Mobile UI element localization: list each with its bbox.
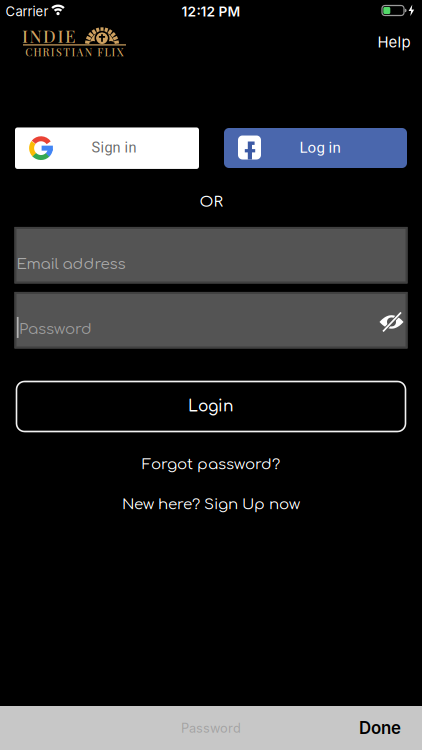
staticText: E bbox=[65, 24, 76, 47]
staticText: Forgot password? bbox=[142, 456, 280, 473]
staticText: H bbox=[33, 45, 41, 59]
staticText: I bbox=[22, 24, 28, 47]
staticText: I bbox=[57, 24, 63, 47]
staticText: R bbox=[43, 45, 50, 59]
staticText: S bbox=[56, 45, 62, 59]
staticText: Log in bbox=[299, 139, 340, 156]
button[interactable]: Sign in bbox=[15, 127, 199, 169]
staticText: I bbox=[112, 45, 116, 59]
button[interactable]: New here? Sign Up now bbox=[122, 496, 300, 513]
staticText: New here? Sign Up now bbox=[122, 496, 300, 513]
staticText: 12:12 PM bbox=[181, 3, 240, 20]
staticText: T bbox=[63, 45, 70, 59]
button[interactable]: Help bbox=[377, 33, 410, 51]
button[interactable]: Log in bbox=[224, 128, 407, 168]
staticText: Email address bbox=[16, 256, 125, 273]
staticText: X bbox=[117, 45, 124, 59]
staticText: Help bbox=[377, 33, 410, 51]
staticText bbox=[93, 45, 96, 59]
staticText: Password bbox=[19, 321, 92, 338]
staticText: C bbox=[25, 45, 32, 59]
staticText: Password bbox=[181, 720, 241, 736]
button[interactable]: Done bbox=[359, 718, 401, 738]
staticText: I bbox=[51, 45, 55, 59]
staticText: Done bbox=[359, 718, 401, 738]
staticText: N bbox=[85, 45, 92, 59]
staticText: Sign in bbox=[91, 139, 136, 156]
button[interactable]: Login bbox=[16, 381, 405, 431]
staticText: OR bbox=[199, 194, 222, 210]
staticText: N bbox=[29, 24, 41, 47]
staticText: A bbox=[77, 45, 84, 59]
staticText: D bbox=[43, 24, 56, 47]
staticText: Login bbox=[188, 398, 234, 415]
staticText: I bbox=[71, 45, 75, 59]
staticText: Carrier bbox=[5, 4, 48, 19]
button[interactable]: Show password bbox=[378, 310, 405, 334]
button[interactable]: Forgot password? bbox=[142, 456, 280, 473]
staticText: F bbox=[97, 45, 103, 59]
staticText: L bbox=[104, 45, 110, 59]
